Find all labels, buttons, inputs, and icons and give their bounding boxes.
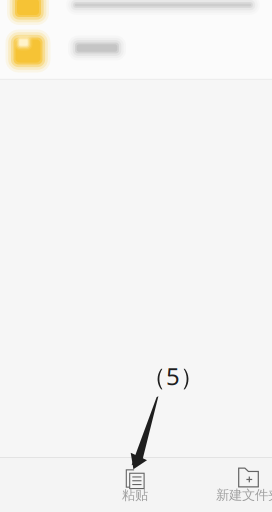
button[interactable]: 粘贴 (80, 458, 190, 512)
staticText: 粘贴 (122, 487, 148, 503)
staticText: （5） (142, 360, 204, 392)
staticText: 新建文件夹 (216, 487, 272, 503)
button[interactable]: 新建文件夹 (193, 458, 272, 512)
